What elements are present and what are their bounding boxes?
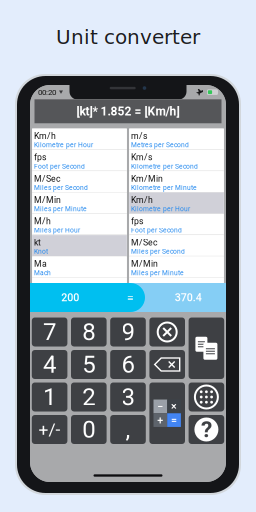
staticText: M/Sec: [34, 174, 61, 184]
staticText: Miles per Minute: [34, 205, 87, 213]
button[interactable]: 8: [71, 317, 107, 346]
button[interactable]: 7: [32, 317, 67, 346]
staticText: 4: [43, 350, 56, 378]
staticText: M/Sec: [131, 237, 158, 248]
staticText: Km/Min: [131, 174, 163, 184]
staticText: 00:20: [38, 87, 56, 97]
staticText: kt: [34, 237, 41, 248]
staticText: Kilometre per Second: [131, 162, 198, 170]
staticText: Km/s: [131, 152, 152, 162]
staticText: fps: [34, 152, 46, 162]
staticText: Km/h: [131, 195, 153, 205]
button[interactable]: Km/h: [32, 129, 127, 150]
button[interactable]: 2: [71, 382, 107, 411]
button[interactable]: kt: [32, 235, 127, 256]
button[interactable]: M/h: [32, 214, 127, 235]
staticText: ×: [171, 400, 177, 413]
staticText: Ma: [34, 259, 47, 269]
button[interactable]: M/Sec: [32, 171, 127, 192]
staticText: Kilometre per Minute: [131, 184, 197, 192]
staticText: 5: [82, 350, 95, 378]
button[interactable]: ,: [110, 415, 146, 444]
staticText: Knot: [34, 248, 48, 255]
button[interactable]: M/Sec: [129, 235, 224, 256]
button[interactable]: fps: [32, 150, 127, 171]
staticText: Miles per Second: [131, 248, 185, 255]
staticText: Foot per Second: [34, 162, 85, 170]
staticText: m/s: [131, 131, 147, 141]
staticText: +: [157, 414, 163, 426]
staticText: 0: [82, 415, 95, 443]
button[interactable]: 1: [32, 382, 67, 411]
staticText: Kilometre per Hour: [131, 205, 190, 213]
staticText: =: [171, 414, 177, 426]
staticText: Unit converter: [56, 25, 200, 49]
staticText: =: [127, 290, 134, 305]
staticText: ?: [201, 416, 212, 443]
button[interactable]: Km/Min: [129, 171, 224, 192]
button[interactable]: Keypad: [189, 382, 224, 411]
staticText: 3: [121, 383, 134, 411]
staticText: 9: [121, 318, 134, 346]
button[interactable]: +/-: [32, 415, 67, 444]
button[interactable]: M/Min: [32, 192, 127, 214]
staticText: Metres per Second: [131, 141, 189, 149]
button[interactable]: ×: [167, 400, 181, 413]
staticText: +/-: [39, 419, 61, 440]
staticText: fps: [131, 216, 143, 226]
staticText: M/Min: [131, 259, 158, 269]
button[interactable]: Clear: [149, 317, 185, 346]
button[interactable]: +: [153, 413, 167, 427]
staticText: 6: [121, 350, 134, 378]
button[interactable]: Km/s: [129, 150, 224, 171]
button[interactable]: 6: [110, 350, 146, 379]
staticText: Miles per Second: [34, 184, 88, 192]
button[interactable]: 4: [32, 350, 67, 379]
button[interactable]: 5: [71, 350, 107, 379]
button[interactable]: Km/h: [129, 192, 224, 214]
staticText: Kilometre per Hour: [34, 141, 93, 149]
staticText: Km/h: [34, 131, 56, 141]
button[interactable]: 9: [110, 317, 146, 346]
staticText: 7: [43, 318, 56, 346]
button[interactable]: =: [167, 413, 181, 427]
button[interactable]: 0: [71, 415, 107, 444]
button[interactable]: m/s: [129, 129, 224, 150]
staticText: Mach: [34, 269, 51, 277]
staticText: Miles per Minute: [131, 269, 184, 277]
staticText: M/Min: [34, 195, 61, 205]
staticText: 2: [82, 383, 95, 411]
staticText: 200: [61, 291, 79, 304]
button[interactable]: Ma: [32, 256, 127, 278]
button[interactable]: 3: [110, 382, 146, 411]
staticText: [kt]* 1.852 = [Km/h]: [76, 104, 179, 118]
button[interactable]: Help: [189, 415, 224, 444]
staticText: 8: [82, 318, 95, 346]
button[interactable]: M/Min: [129, 256, 224, 278]
staticText: Foot per Second: [131, 226, 182, 234]
staticText: −: [157, 400, 163, 413]
staticText: 1: [43, 383, 56, 411]
button[interactable]: −: [153, 400, 167, 413]
staticText: M/h: [34, 216, 51, 226]
button[interactable]: fps: [129, 214, 224, 235]
staticText: ,: [125, 415, 130, 443]
staticText: 370.4: [175, 291, 202, 304]
button[interactable]: Copy and paste: [189, 317, 224, 379]
button[interactable]: Backspace: [149, 350, 185, 379]
staticText: Miles per Hour: [34, 226, 80, 234]
